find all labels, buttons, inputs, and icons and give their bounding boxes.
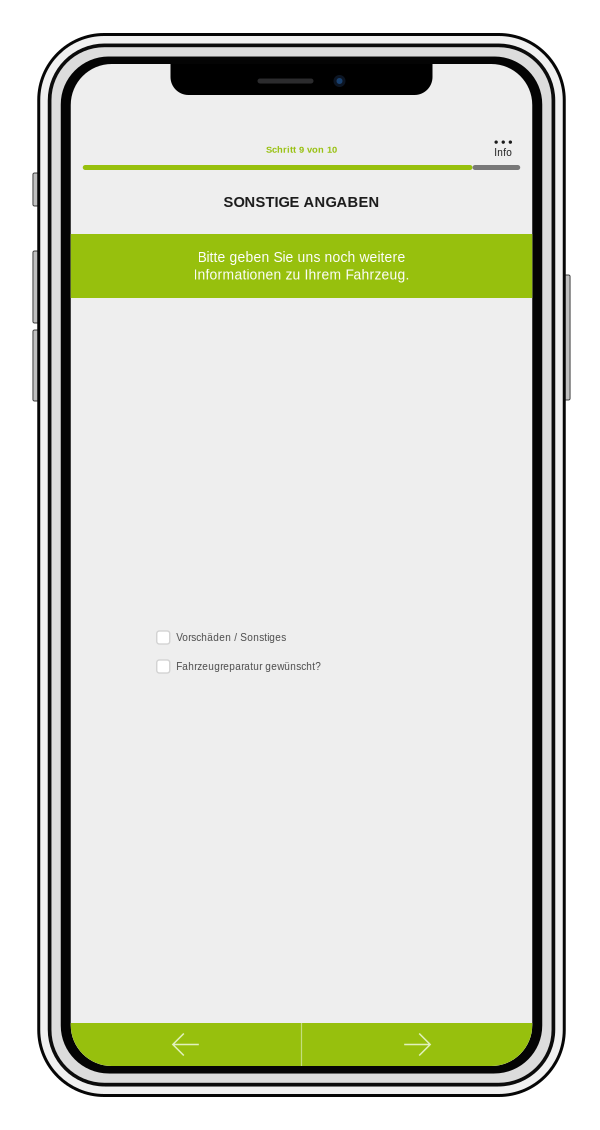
staticText: SONSTIGE ANGABEN	[223, 194, 379, 210]
button[interactable]: Weiter	[302, 1023, 532, 1066]
button[interactable]: Zurück	[71, 1023, 301, 1066]
button[interactable]: Info	[486, 135, 520, 165]
staticText: Info	[494, 147, 512, 158]
staticText: Bitte geben Sie uns noch weitere	[197, 249, 405, 265]
staticText: Informationen zu Ihrem Fahrzeug.	[193, 267, 409, 282]
staticText: Schritt 9 von 10	[266, 144, 337, 155]
button[interactable]: Fahrzeugreparatur gewünscht?	[157, 660, 532, 673]
button[interactable]: Vorschäden / Sonstiges	[157, 631, 532, 644]
staticText: Fahrzeugreparatur gewünscht?	[176, 661, 321, 672]
staticText: Vorschäden / Sonstiges	[176, 632, 286, 643]
